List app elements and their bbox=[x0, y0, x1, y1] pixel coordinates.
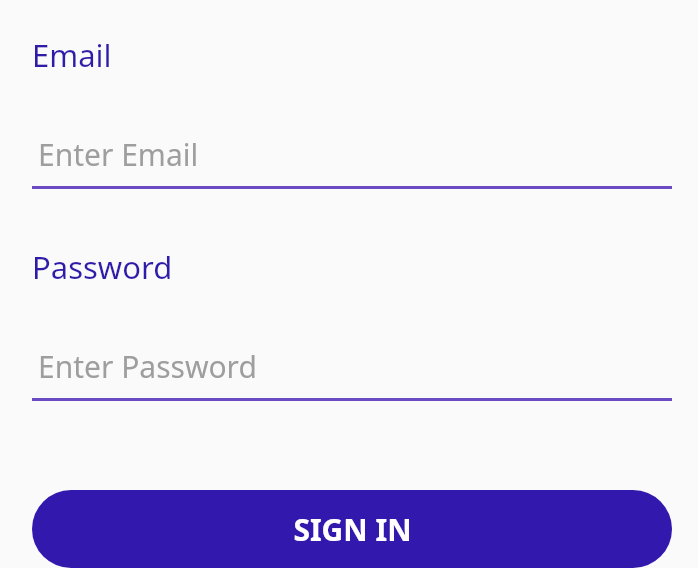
staticText: Enter Password bbox=[38, 346, 257, 387]
staticText: SIGN IN bbox=[293, 509, 412, 550]
button[interactable]: Sign in bbox=[32, 490, 672, 568]
button[interactable]: Enter Password bbox=[32, 346, 672, 401]
staticText: Email bbox=[32, 34, 112, 76]
button[interactable]: Enter Email bbox=[32, 134, 672, 189]
staticText: Enter Email bbox=[38, 134, 199, 175]
staticText: Password bbox=[32, 246, 173, 288]
